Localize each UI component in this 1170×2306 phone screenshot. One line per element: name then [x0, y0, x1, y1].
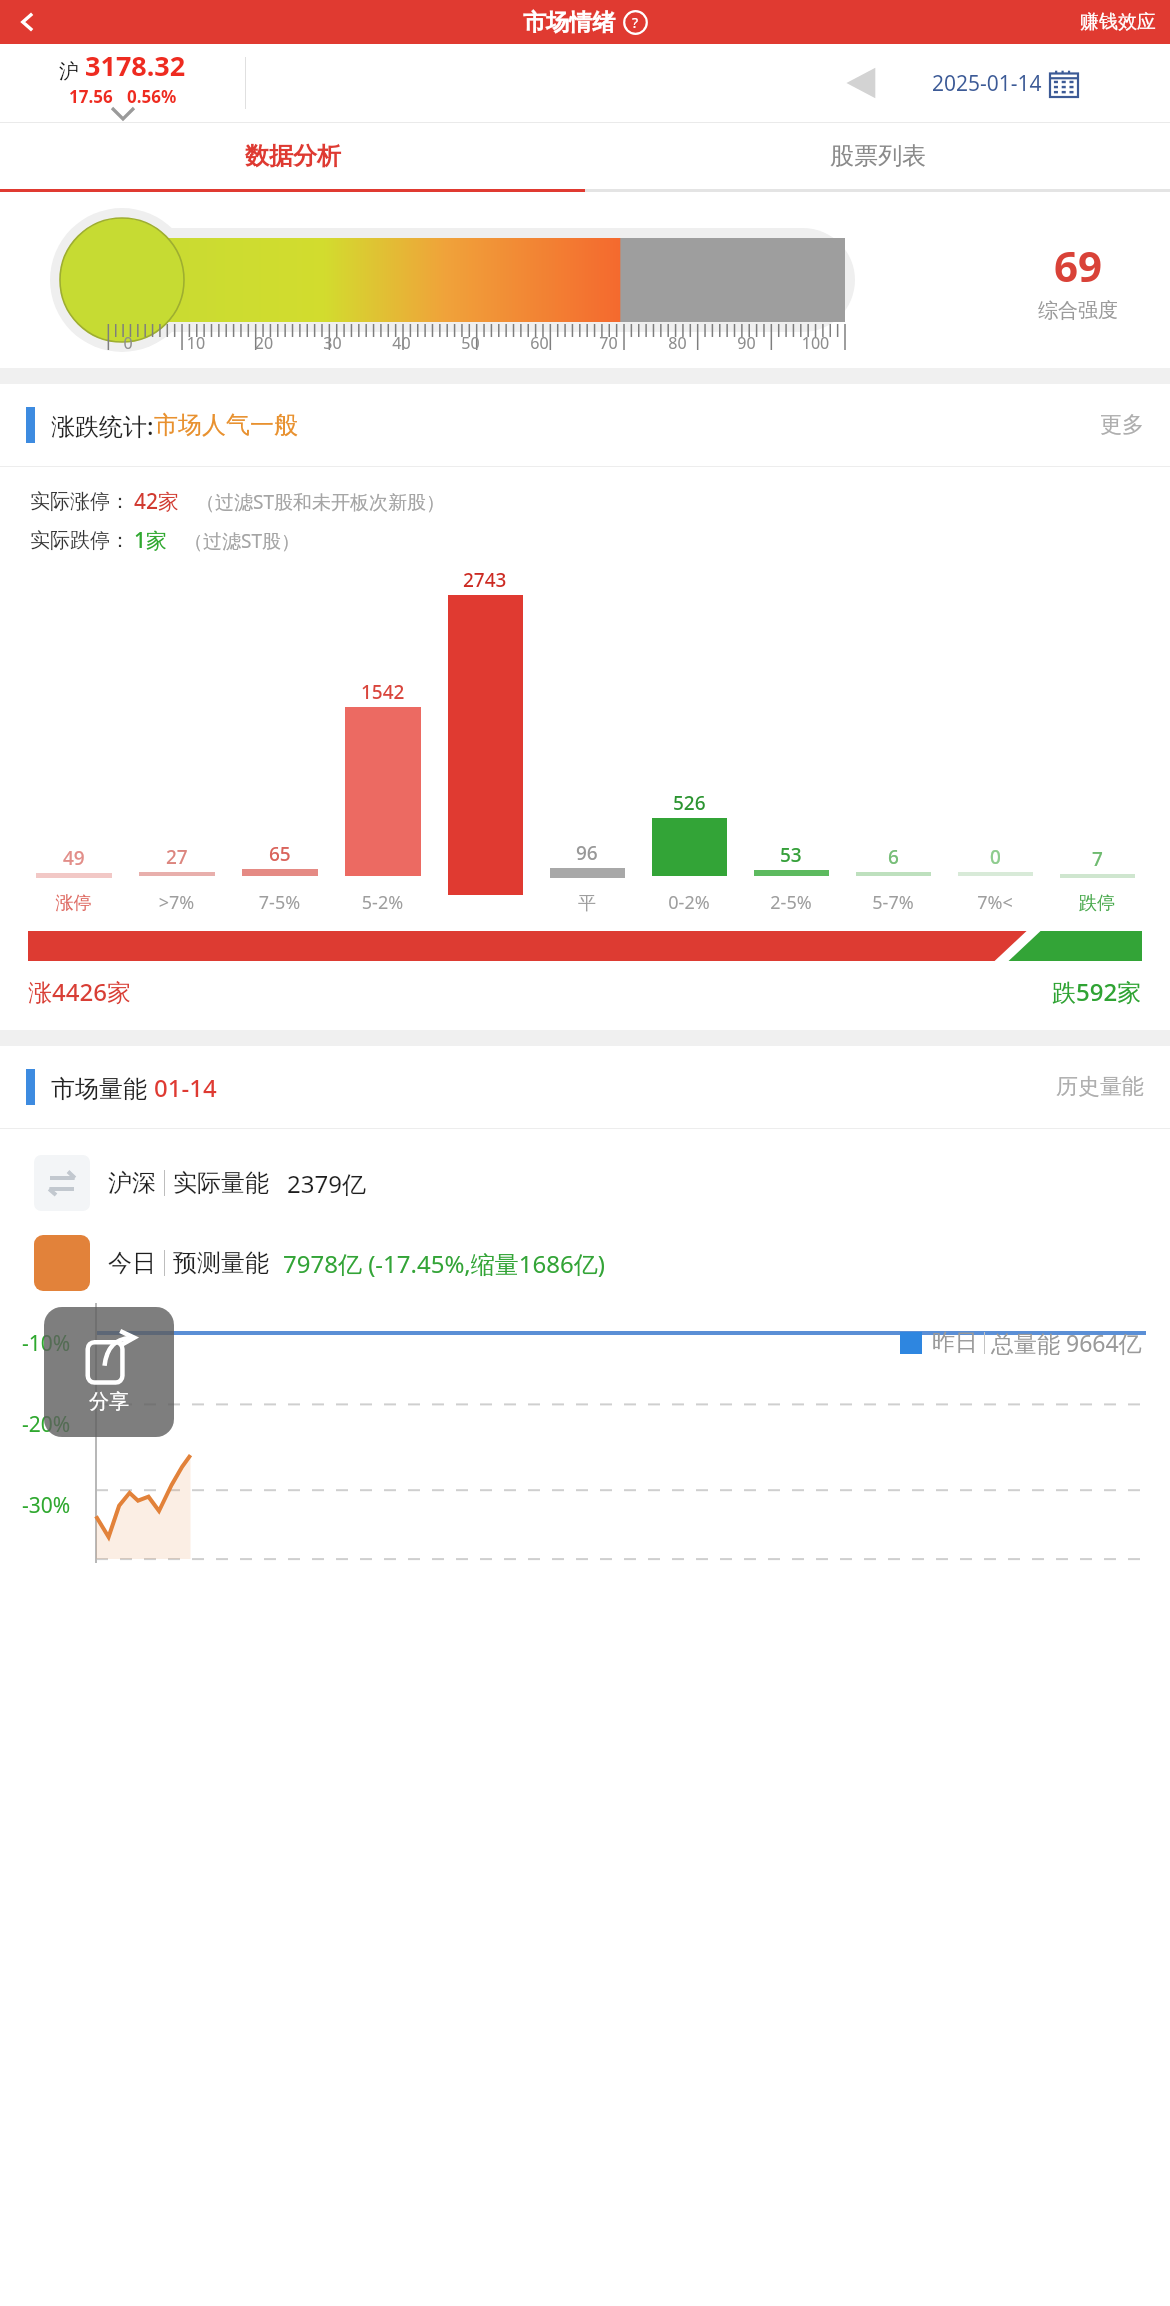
staticText: 0-2% — [638, 890, 740, 915]
button[interactable]: Share — [44, 1307, 174, 1437]
staticText: 跌停 — [1046, 892, 1148, 915]
staticText: 预测量能 — [173, 1248, 269, 1278]
staticText: 65 — [269, 841, 291, 867]
staticText: 90 — [712, 332, 781, 354]
staticText: 7978亿 (-17.45%,缩量1686亿) — [283, 1247, 605, 1280]
staticText: 跌592家 — [1052, 975, 1142, 1008]
staticText: 总量能 9664亿 — [991, 1327, 1142, 1358]
staticText: 1542 — [361, 679, 405, 705]
staticText: 涨4426家 — [28, 975, 131, 1008]
staticText: 0 — [94, 332, 162, 354]
staticText: 2025-01-14 — [932, 69, 1042, 98]
button[interactable]: 7 — [1046, 846, 1148, 915]
button[interactable]: 69 — [1038, 237, 1118, 323]
button[interactable]: 1542 — [331, 679, 434, 915]
staticText: 昨日 — [932, 1328, 978, 1357]
button[interactable]: 96 — [536, 840, 638, 915]
button[interactable]: 赚钱效应 — [1080, 10, 1156, 34]
button[interactable]: 2025-01-14 — [887, 59, 1122, 107]
staticText: 更多 — [1100, 411, 1144, 439]
staticText: 实际跌停： — [30, 528, 130, 553]
staticText: 100 — [781, 332, 850, 354]
staticText: 27 — [166, 844, 188, 870]
staticText: 涨停 — [22, 892, 125, 915]
staticText: -30% — [22, 1491, 71, 1520]
staticText: 市场人气一般 — [154, 410, 298, 440]
staticText: 股票列表 — [830, 141, 926, 171]
staticText: 42家 — [134, 487, 180, 516]
staticText: 平 — [536, 892, 638, 915]
button[interactable]: 沪 — [0, 44, 245, 122]
staticText: 53 — [780, 842, 802, 868]
staticText: 今日 — [108, 1248, 156, 1278]
staticText: 数据分析 — [245, 141, 341, 171]
button[interactable]: 27 — [125, 844, 228, 915]
staticText: 69 — [1054, 237, 1103, 294]
staticText: 实际量能 — [173, 1168, 269, 1198]
button[interactable]: 53 — [740, 842, 842, 915]
staticText: 1家 — [134, 526, 168, 555]
staticText: 市场量能 — [51, 1071, 154, 1104]
button[interactable]: 今日 — [34, 1235, 1170, 1291]
staticText: 综合强度 — [1038, 298, 1118, 323]
staticText: 526 — [673, 790, 706, 816]
staticText: 实际涨停： — [30, 489, 130, 514]
staticText: 10 — [162, 332, 230, 354]
button[interactable]: 数据分析 — [0, 123, 585, 189]
staticText: 96 — [576, 840, 598, 866]
staticText: 20 — [230, 332, 298, 354]
staticText: 49 — [63, 845, 85, 871]
staticText: 40 — [367, 332, 436, 354]
staticText: -20% — [22, 1410, 71, 1439]
staticText: （过滤ST股和未开板次新股） — [196, 489, 445, 515]
staticText: 赚钱效应 — [1080, 10, 1156, 34]
staticText: 0 — [990, 844, 1001, 870]
staticText: 5-2% — [331, 890, 434, 915]
staticText: 2-5% — [740, 890, 842, 915]
staticText: （过滤ST股） — [184, 528, 300, 554]
staticText: 0.56% — [127, 85, 177, 108]
staticText: 17.56 — [69, 85, 113, 108]
button[interactable]: 沪深 — [34, 1155, 1170, 1211]
button[interactable]: 6 — [842, 844, 944, 915]
staticText: 7%< — [944, 890, 1046, 915]
button[interactable]: 历史量能 — [1056, 1073, 1144, 1101]
staticText: 沪 — [59, 59, 79, 84]
staticText: 01-14 — [154, 1071, 217, 1104]
staticText: 3178.32 — [85, 47, 186, 84]
staticText: 历史量能 — [1056, 1073, 1144, 1101]
staticText: 50 — [436, 332, 505, 354]
button[interactable]: 股票列表 — [585, 123, 1170, 189]
staticText: 2743 — [463, 567, 507, 593]
staticText: 2379亿 — [287, 1167, 366, 1200]
staticText: 7 — [1092, 846, 1103, 872]
staticText: 涨跌统计: — [51, 409, 154, 442]
button[interactable]: 65 — [228, 841, 331, 915]
button[interactable]: Back — [6, 0, 50, 44]
staticText: 市场情绪 — [523, 8, 615, 37]
staticText: 30 — [298, 332, 367, 354]
button[interactable]: 526 — [638, 790, 740, 915]
staticText: >7% — [125, 890, 228, 915]
staticText: ? — [632, 13, 639, 32]
button[interactable]: Previous day — [843, 63, 877, 103]
staticText: 80 — [643, 332, 712, 354]
button[interactable]: 49 — [22, 845, 125, 915]
button[interactable]: 0 — [944, 844, 1046, 915]
staticText: 6 — [888, 844, 899, 870]
staticText: -10% — [22, 1329, 71, 1358]
staticText: 沪深 — [108, 1168, 156, 1198]
staticText: 7-5% — [228, 890, 331, 915]
staticText: 分享 — [89, 1389, 129, 1414]
staticText: 5-7% — [842, 890, 944, 915]
staticText: 60 — [505, 332, 574, 354]
staticText: 70 — [574, 332, 643, 354]
button[interactable]: 2743 — [434, 567, 536, 915]
button[interactable]: 市场情绪 — [523, 8, 648, 37]
button[interactable]: 更多 — [1100, 411, 1144, 439]
